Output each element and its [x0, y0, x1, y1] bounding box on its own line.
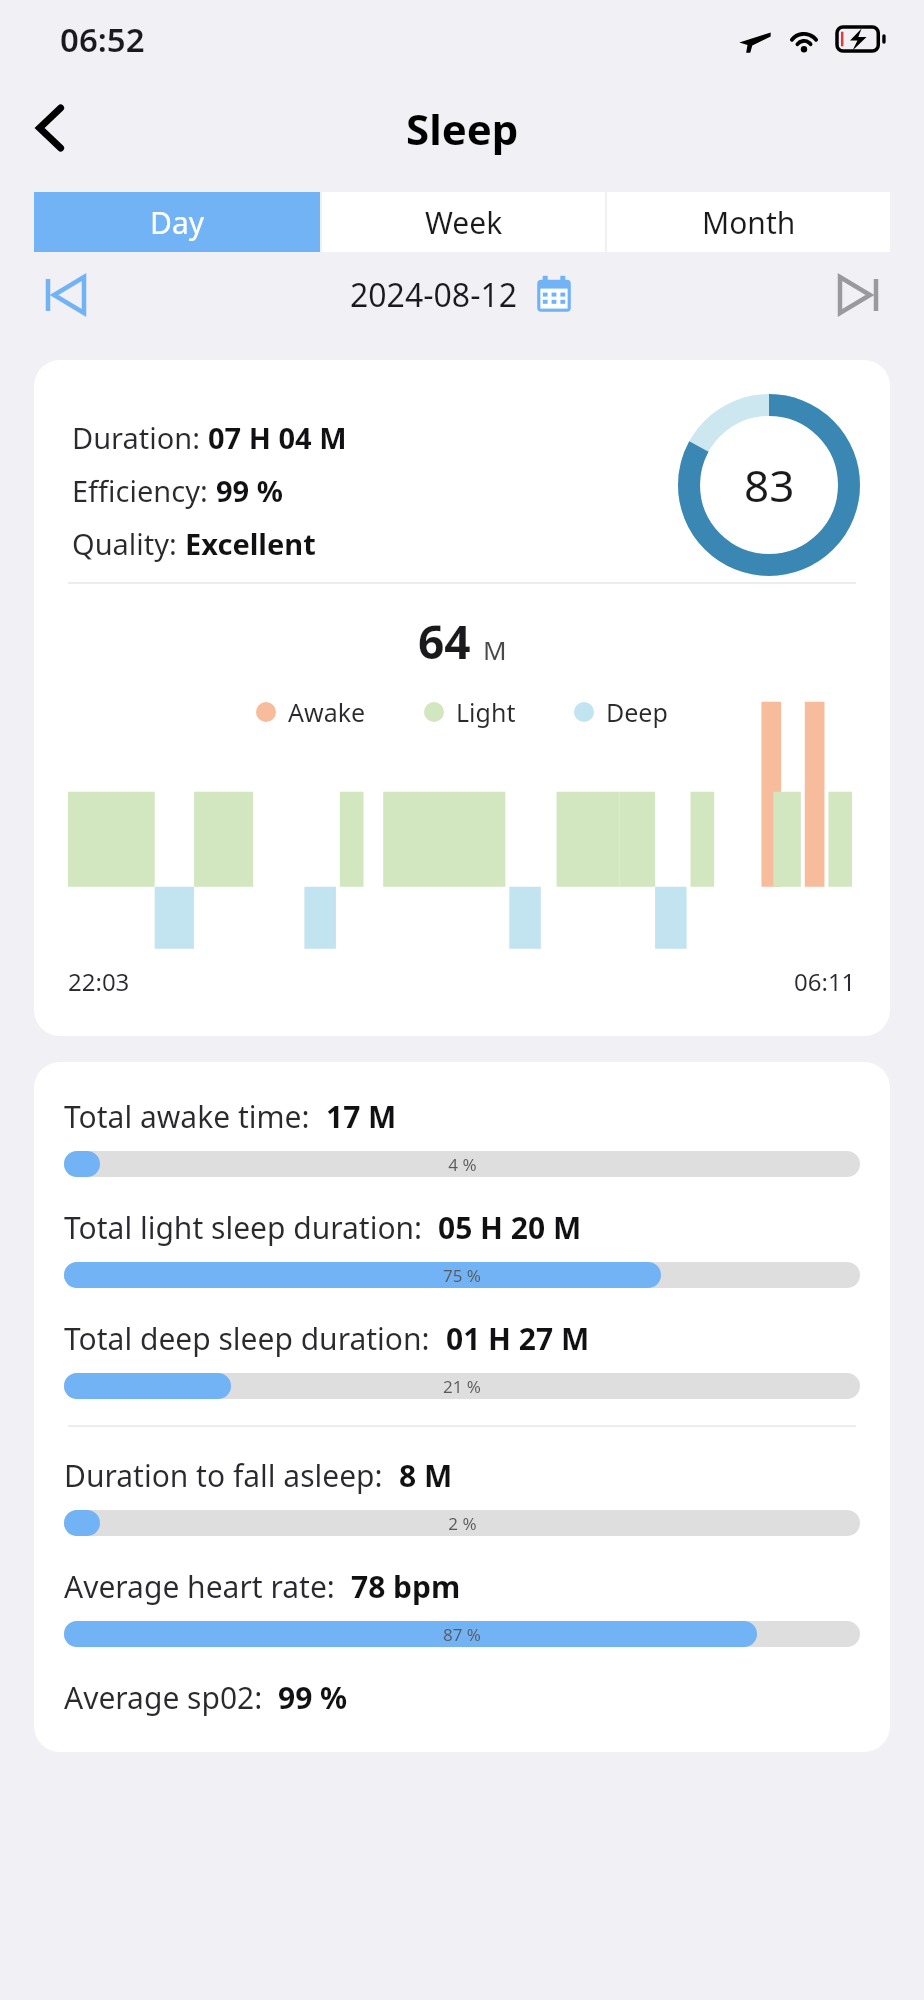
button[interactable]: Next day: [826, 263, 890, 327]
staticText: Week: [425, 202, 503, 243]
staticText: 8 M: [399, 1455, 453, 1496]
staticText: 2024-08-12: [350, 273, 518, 317]
button[interactable]: Day: [34, 192, 320, 252]
staticText: Month: [702, 202, 796, 243]
button[interactable]: Previous day: [34, 263, 98, 327]
staticText: Day: [150, 202, 205, 243]
staticText: Excellent: [185, 524, 316, 563]
staticText: Quality:: [72, 524, 185, 563]
staticText: Duration to fall asleep:: [64, 1455, 399, 1496]
staticText: 21 %: [443, 1375, 481, 1398]
staticText: Efficiency:: [72, 471, 216, 510]
staticText: 07 H 04 M: [208, 418, 347, 457]
staticText: 83: [744, 455, 795, 515]
staticText: Duration:: [72, 418, 208, 457]
staticText: 01 H 27 M: [446, 1318, 590, 1359]
staticText: Awake: [288, 695, 366, 729]
staticText: 99 %: [216, 471, 283, 510]
button[interactable]: Month: [607, 192, 890, 252]
staticText: 99 %: [278, 1677, 348, 1718]
staticText: Average sp02:: [64, 1677, 278, 1718]
staticText: Total deep sleep duration:: [64, 1318, 446, 1359]
staticText: 87 %: [443, 1623, 481, 1646]
button[interactable]: Week: [322, 192, 605, 252]
button[interactable]: Back: [22, 99, 80, 157]
staticText: Sleep: [406, 100, 519, 157]
button[interactable]: Pick date: [534, 275, 574, 315]
staticText: 75 %: [443, 1264, 481, 1287]
staticText: 22:03: [68, 965, 130, 998]
staticText: 78 bpm: [351, 1566, 461, 1607]
staticText: 05 H 20 M: [438, 1207, 582, 1248]
staticText: 06:11: [794, 965, 856, 998]
staticText: Total awake time:: [64, 1096, 326, 1137]
staticText: Light: [456, 695, 516, 729]
staticText: 64: [418, 610, 471, 673]
staticText: 17 M: [326, 1096, 397, 1137]
staticText: 2 %: [448, 1512, 477, 1535]
staticText: Total light sleep duration:: [64, 1207, 438, 1248]
staticText: M: [483, 632, 507, 667]
staticText: Deep: [606, 695, 668, 729]
staticText: 06:52: [60, 17, 145, 62]
staticText: Average heart rate:: [64, 1566, 351, 1607]
staticText: 4 %: [448, 1153, 477, 1176]
